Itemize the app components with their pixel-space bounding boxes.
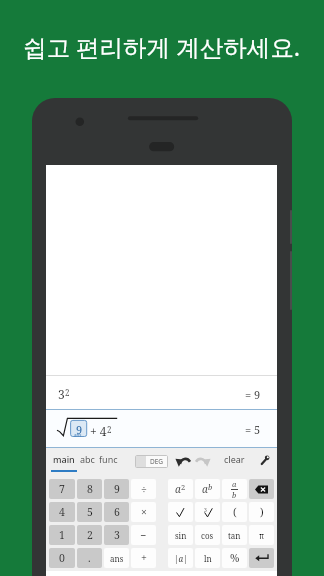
button[interactable]: 5 xyxy=(77,502,102,522)
staticText: 1 xyxy=(59,528,65,542)
button[interactable]: ) xyxy=(249,502,274,522)
button[interactable]: a xyxy=(195,479,220,499)
staticText: abc xyxy=(80,453,95,465)
staticText: func xyxy=(99,453,118,465)
button[interactable]: Undo xyxy=(174,453,191,469)
staticText: |a| xyxy=(174,553,188,564)
staticText: clear xyxy=(224,453,245,465)
button[interactable]: − xyxy=(131,525,156,545)
staticText: b xyxy=(232,490,237,499)
staticText: main xyxy=(53,453,75,465)
button[interactable]: 2 xyxy=(77,525,102,545)
button[interactable]: ln xyxy=(195,548,220,568)
button[interactable]: 3 xyxy=(195,502,220,522)
button[interactable]: Redo xyxy=(194,453,211,469)
staticText: ln xyxy=(204,553,212,564)
staticText: 5 xyxy=(87,505,93,519)
staticText: 9 xyxy=(114,482,120,496)
staticText: 2 xyxy=(65,387,70,398)
staticText: × xyxy=(141,505,147,519)
button[interactable]: ( xyxy=(222,502,247,522)
button[interactable]: 9 xyxy=(104,479,129,499)
button[interactable]: abc xyxy=(79,453,95,468)
staticText: = 5 xyxy=(245,422,261,437)
staticText: ÷ xyxy=(141,482,147,496)
staticText: 8 xyxy=(87,482,93,496)
staticText: + 4 xyxy=(90,423,107,439)
staticText: a xyxy=(232,479,237,489)
button[interactable] xyxy=(249,548,274,568)
button[interactable] xyxy=(249,479,274,499)
staticText: cos xyxy=(201,530,214,541)
staticText: 4 xyxy=(59,505,65,519)
button[interactable]: a xyxy=(168,479,193,499)
button[interactable]: clear xyxy=(223,453,246,468)
button[interactable]: 3 xyxy=(104,525,129,545)
button[interactable]: ÷ xyxy=(131,479,156,499)
button[interactable]: sin xyxy=(168,525,193,545)
staticText: ( xyxy=(233,505,237,519)
staticText: ) xyxy=(260,505,264,519)
staticText: . xyxy=(88,551,91,565)
button[interactable]: DEG xyxy=(136,456,167,467)
staticText: π xyxy=(259,530,265,541)
button[interactable]: |a| xyxy=(168,548,193,568)
button[interactable]: 3 xyxy=(46,376,277,409)
staticText: 6 xyxy=(114,505,120,519)
button[interactable]: func xyxy=(99,453,118,468)
button[interactable]: Settings xyxy=(257,453,272,468)
staticText: 7 xyxy=(59,482,65,496)
staticText: 0 xyxy=(59,551,65,565)
button[interactable]: 1 xyxy=(49,525,75,545)
button[interactable]: cos xyxy=(195,525,220,545)
staticText: % xyxy=(230,551,240,565)
button[interactable]: π xyxy=(249,525,274,545)
staticText: ans xyxy=(110,553,124,564)
button[interactable]: 9 xyxy=(46,410,277,447)
button[interactable]: × xyxy=(131,502,156,522)
staticText: 2 xyxy=(87,528,93,542)
staticText: 3 xyxy=(58,386,65,402)
staticText: = 9 xyxy=(245,387,261,402)
staticText: DEG xyxy=(150,457,164,466)
button[interactable] xyxy=(168,502,193,522)
staticText: tan xyxy=(228,530,241,541)
button[interactable]: 7 xyxy=(49,479,75,499)
staticText: 2 xyxy=(181,482,186,492)
button[interactable]: a xyxy=(222,479,247,499)
staticText: − xyxy=(140,528,147,542)
button[interactable]: + xyxy=(131,548,156,568)
staticText: 3 xyxy=(114,528,120,542)
button[interactable]: 6 xyxy=(104,502,129,522)
staticText: sin xyxy=(175,530,187,541)
button[interactable]: tan xyxy=(222,525,247,545)
staticText: 쉽고 편리하게 계산하세요. xyxy=(23,31,301,63)
button[interactable]: 8 xyxy=(77,479,102,499)
staticText: a xyxy=(175,482,181,496)
staticText: ans xyxy=(74,432,82,438)
staticText: 2 xyxy=(107,424,112,435)
button[interactable]: 0 xyxy=(49,548,75,568)
button[interactable]: ans xyxy=(104,548,129,568)
staticText: a xyxy=(202,482,208,496)
staticText: 9 xyxy=(76,422,83,437)
button[interactable]: . xyxy=(77,548,102,568)
button[interactable]: % xyxy=(222,548,247,568)
staticText: + xyxy=(141,551,147,565)
staticText: b xyxy=(208,482,213,492)
button[interactable]: 4 xyxy=(49,502,75,522)
staticText: 3 xyxy=(204,507,207,514)
button[interactable]: main xyxy=(51,453,77,472)
